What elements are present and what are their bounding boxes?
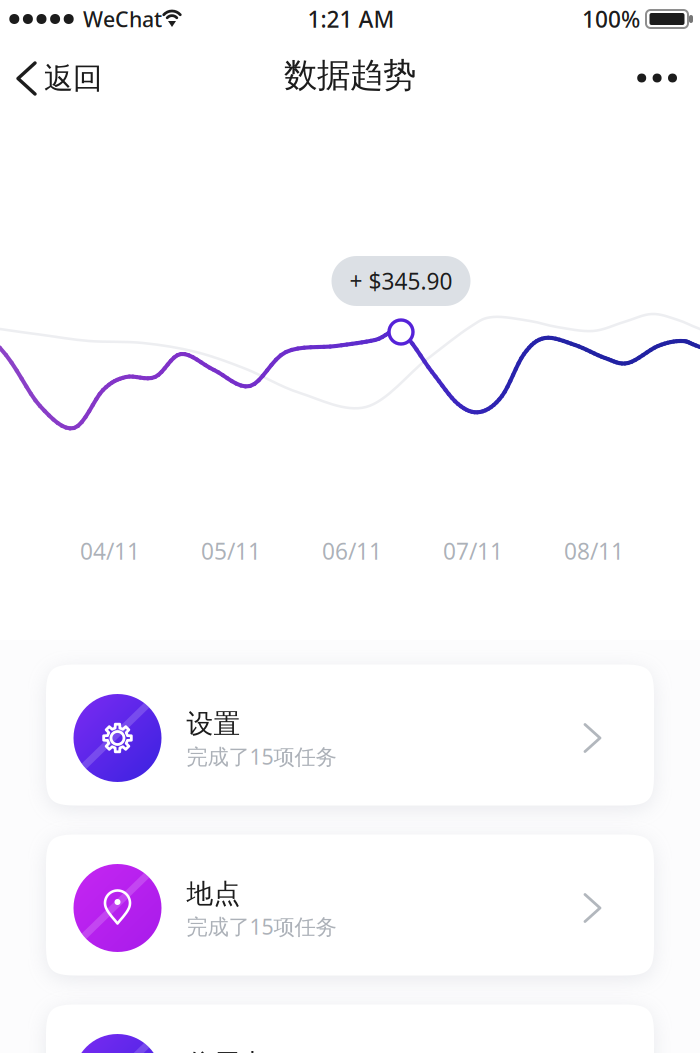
staticText: 06/11 — [322, 536, 382, 566]
staticText: 完成了15项任务 — [186, 742, 336, 770]
button[interactable]: 信用卡 — [46, 1004, 654, 1053]
staticText: 1:21 AM — [307, 4, 394, 34]
staticText: 07/11 — [443, 536, 503, 566]
staticText: 地点 — [186, 877, 240, 910]
button[interactable]: 设置 — [46, 664, 654, 805]
button[interactable]: 地点 — [46, 834, 654, 975]
button[interactable]: More options — [611, 38, 700, 113]
staticText: 完成了15项任务 — [186, 912, 336, 940]
staticText: 数据趋势 — [284, 55, 416, 96]
staticText: 05/11 — [201, 536, 261, 566]
staticText: 信用卡 — [186, 1047, 267, 1053]
staticText: 100% — [582, 4, 640, 34]
button[interactable]: 返回 — [0, 38, 122, 113]
staticText: 08/11 — [564, 536, 624, 566]
staticText: WeChat — [83, 5, 162, 33]
staticText: 设置 — [186, 707, 240, 740]
staticText: 04/11 — [80, 536, 140, 566]
staticText: 返回 — [44, 60, 102, 96]
staticText: + $345.90 — [349, 266, 452, 296]
